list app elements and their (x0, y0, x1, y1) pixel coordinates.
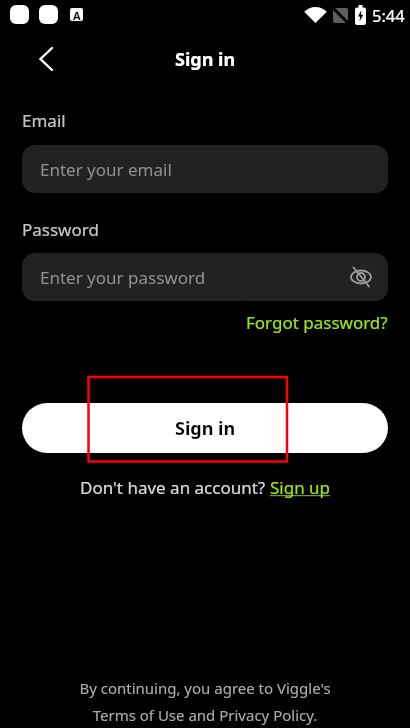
staticText: Email (22, 109, 66, 132)
staticText: Sign in (175, 416, 236, 441)
staticText: Sign in (175, 47, 236, 72)
staticText: A (73, 8, 81, 21)
button[interactable]: Enter your password (22, 253, 388, 301)
staticText: Terms of Use and Privacy Policy. (0, 705, 410, 725)
staticText: Password (22, 218, 99, 241)
staticText: By continuing, you agree to Viggle's (0, 678, 410, 698)
button[interactable]: Don't have an account? (22, 476, 388, 499)
staticText: Enter your password (40, 266, 206, 289)
button[interactable]: Forgot password? (246, 311, 388, 334)
button[interactable]: Sign in (22, 403, 388, 453)
staticText: Forgot password? (246, 311, 388, 334)
staticText: 5:44 (372, 4, 405, 26)
button[interactable]: Enter your email (22, 145, 388, 193)
button[interactable] (30, 43, 62, 75)
staticText: Sign up (270, 476, 331, 499)
staticText: Enter your email (40, 158, 172, 181)
staticText: Don't have an account? (80, 476, 270, 499)
